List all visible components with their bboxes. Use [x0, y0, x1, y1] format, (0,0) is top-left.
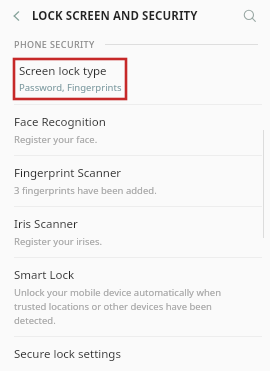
staticText: trusted locations or other devices have … — [14, 300, 212, 313]
staticText: Unlock your mobile device automatically … — [14, 286, 221, 299]
button[interactable]: Fingerprint Scanner — [0, 156, 270, 206]
staticText: Password, Fingerprints — [19, 81, 122, 94]
staticText: Screen lock type — [19, 63, 107, 79]
staticText: Register your face. — [14, 133, 98, 146]
staticText: LOCK SCREEN AND SECURITY — [32, 8, 198, 24]
staticText: Iris Scanner — [14, 216, 78, 232]
staticText: detected. — [14, 314, 56, 327]
button[interactable]: Screen lock type — [0, 57, 270, 104]
staticText: Secure lock settings — [14, 346, 121, 362]
staticText: Smart Lock — [14, 267, 75, 283]
button[interactable]: Iris Scanner — [0, 207, 270, 257]
staticText: PHONE SECURITY — [14, 38, 95, 50]
staticText: Fingerprint Scanner — [14, 165, 122, 181]
button[interactable]: Secure lock settings — [0, 337, 270, 371]
button[interactable]: Back — [6, 5, 28, 27]
button[interactable]: Face Recognition — [0, 105, 270, 155]
staticText: Face Recognition — [14, 114, 106, 130]
button[interactable]: Search — [238, 4, 262, 28]
staticText: Register your irises. — [14, 235, 102, 248]
button[interactable]: Smart Lock — [0, 258, 270, 336]
staticText: 3 fingerprints have been added. — [14, 184, 157, 197]
